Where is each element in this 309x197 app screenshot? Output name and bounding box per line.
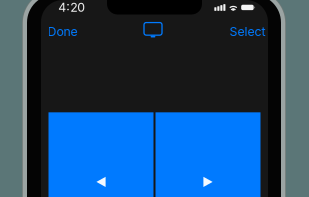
staticText: 4:20 — [58, 0, 85, 15]
button[interactable]: AirPlay display — [140, 19, 165, 40]
staticText: Select — [229, 24, 265, 39]
staticText: Done — [47, 24, 77, 39]
button[interactable]: Done — [44, 19, 80, 44]
button[interactable]: Previous — [48, 112, 153, 197]
button[interactable]: Next — [155, 112, 260, 197]
button[interactable]: Select — [226, 19, 268, 44]
